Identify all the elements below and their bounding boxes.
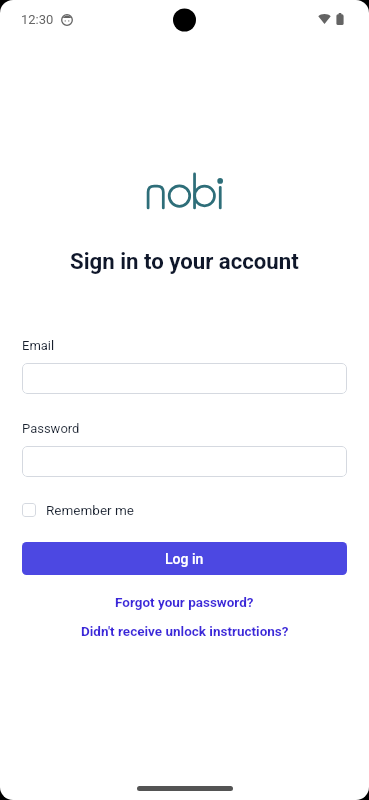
- staticText: Email: [22, 338, 55, 353]
- staticText: Password: [22, 421, 80, 436]
- other: Battery: [336, 13, 344, 25]
- staticText: Remember me: [46, 502, 134, 518]
- staticText: Sign in to your account: [70, 248, 299, 274]
- staticText: 12:30: [21, 12, 54, 27]
- button[interactable]: Remember me: [22, 502, 134, 518]
- button[interactable]: [22, 363, 347, 394]
- other: Notification: [61, 14, 73, 26]
- button[interactable]: [22, 446, 347, 477]
- button[interactable]: Log in: [22, 542, 347, 575]
- staticText: Log in: [165, 551, 204, 567]
- button[interactable]: Forgot your password?: [115, 594, 254, 610]
- button[interactable]: Didn't receive unlock instructions?: [81, 623, 289, 639]
- other: Wi-Fi: [318, 13, 331, 24]
